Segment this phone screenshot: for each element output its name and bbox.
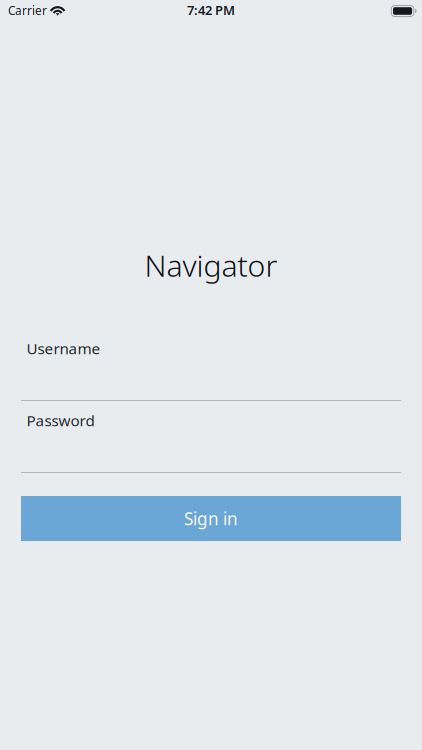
staticText: Username — [26, 338, 100, 359]
button[interactable]: Sign in — [21, 496, 401, 541]
staticText: Carrier — [8, 2, 47, 18]
button[interactable]: Password — [21, 401, 401, 473]
staticText: Navigator — [144, 244, 277, 285]
button[interactable]: Username — [21, 329, 401, 401]
staticText: Sign in — [184, 507, 238, 530]
staticText: 7:42 PM — [187, 1, 235, 19]
staticText: Password — [26, 410, 94, 431]
